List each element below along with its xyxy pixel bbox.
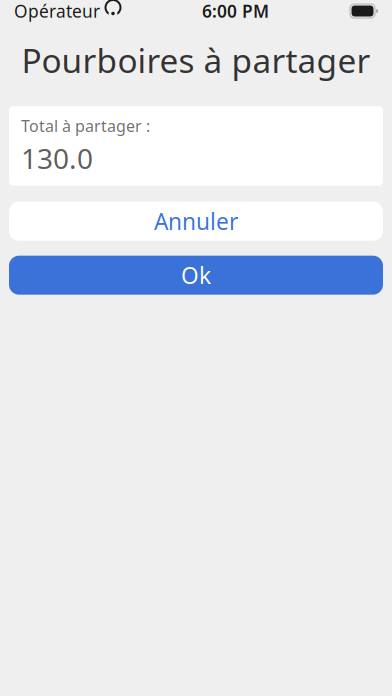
staticText: 130.0 xyxy=(21,139,93,177)
staticText: Annuler xyxy=(154,206,238,236)
staticText: Ok xyxy=(181,260,211,290)
button[interactable]: Ok xyxy=(9,256,383,295)
staticText: 6:00 PM xyxy=(202,0,269,22)
button[interactable]: Annuler xyxy=(9,202,383,241)
staticText: Pourboires à partager xyxy=(21,38,370,82)
staticText: Total à partager : xyxy=(21,115,150,136)
staticText: Opérateur xyxy=(14,0,100,22)
